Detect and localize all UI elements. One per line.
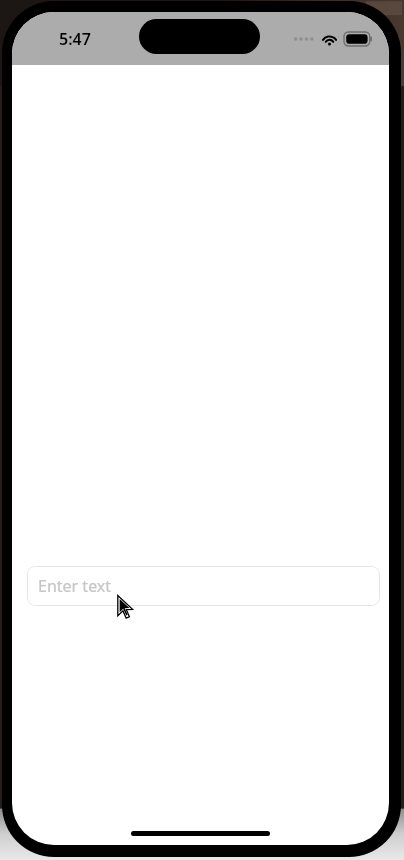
button[interactable]: Enter text xyxy=(27,566,380,606)
staticText: 5:47 xyxy=(59,28,91,50)
staticText: Enter text xyxy=(38,575,112,597)
other: Home indicator xyxy=(131,831,270,836)
